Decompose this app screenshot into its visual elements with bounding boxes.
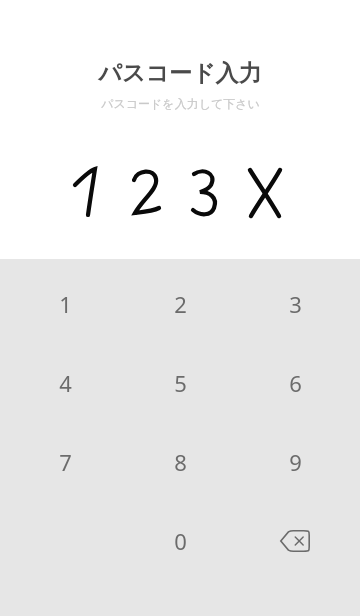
button[interactable]: 5: [130, 353, 230, 413]
staticText: 5: [174, 368, 187, 398]
staticText: 8: [174, 447, 187, 477]
staticText: 1: [59, 289, 72, 319]
staticText: 9: [289, 447, 302, 477]
staticText: パスコードを入力して下さい: [101, 96, 260, 111]
button[interactable]: 3: [245, 274, 345, 334]
button[interactable]: 6: [245, 353, 345, 413]
staticText: パスコード入力: [98, 59, 262, 88]
staticText: 3: [289, 289, 302, 319]
button[interactable]: 7: [15, 432, 115, 492]
staticText: 4: [59, 368, 72, 398]
staticText: 2: [174, 289, 187, 319]
staticText: 7: [59, 447, 72, 477]
staticText: 0: [174, 526, 187, 556]
staticText: 6: [289, 368, 302, 398]
button[interactable]: Delete: [245, 511, 345, 571]
button[interactable]: 8: [130, 432, 230, 492]
button[interactable]: 4: [15, 353, 115, 413]
button[interactable]: 9: [245, 432, 345, 492]
button[interactable]: 2: [130, 274, 230, 334]
button[interactable]: 0: [130, 511, 230, 571]
button[interactable]: 1: [15, 274, 115, 334]
